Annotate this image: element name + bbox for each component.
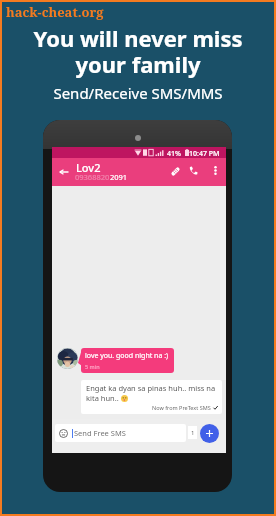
button[interactable]: Attach bbox=[166, 162, 184, 180]
staticText: 5 min bbox=[85, 363, 100, 370]
staticText: 09368820 bbox=[75, 172, 110, 182]
staticText: Send Free SMS bbox=[74, 428, 126, 438]
button[interactable]: Engat ka dyan sa pinas huh.. miss na bbox=[81, 380, 222, 414]
staticText: kita hun.. bbox=[86, 393, 119, 403]
button[interactable]: Send message bbox=[200, 424, 219, 443]
staticText: 1 bbox=[191, 429, 195, 437]
staticText: You will never miss bbox=[33, 23, 243, 53]
staticText: Now from PreText SMS bbox=[152, 404, 211, 411]
staticText: 10:47 PM bbox=[189, 149, 220, 159]
button[interactable]: More options bbox=[207, 162, 223, 179]
staticText: 41% bbox=[167, 149, 181, 159]
staticText: Send/Receive SMS/MMS bbox=[53, 83, 223, 103]
button[interactable]: Back bbox=[54, 161, 74, 183]
staticText: 2091 bbox=[110, 172, 128, 182]
staticText: Engat ka dyan sa pinas huh.. miss na bbox=[86, 383, 216, 393]
staticText: love you. good night na :) bbox=[85, 351, 169, 361]
staticText: hack-cheat.org bbox=[6, 3, 104, 21]
staticText: Lov2 bbox=[76, 160, 101, 175]
button[interactable]: Message counter bbox=[188, 426, 197, 439]
button[interactable]: Send Free SMS bbox=[55, 424, 186, 442]
staticText: your family bbox=[75, 49, 201, 79]
button[interactable]: love you. good night na :) bbox=[81, 348, 174, 373]
button[interactable]: Call bbox=[185, 162, 202, 179]
